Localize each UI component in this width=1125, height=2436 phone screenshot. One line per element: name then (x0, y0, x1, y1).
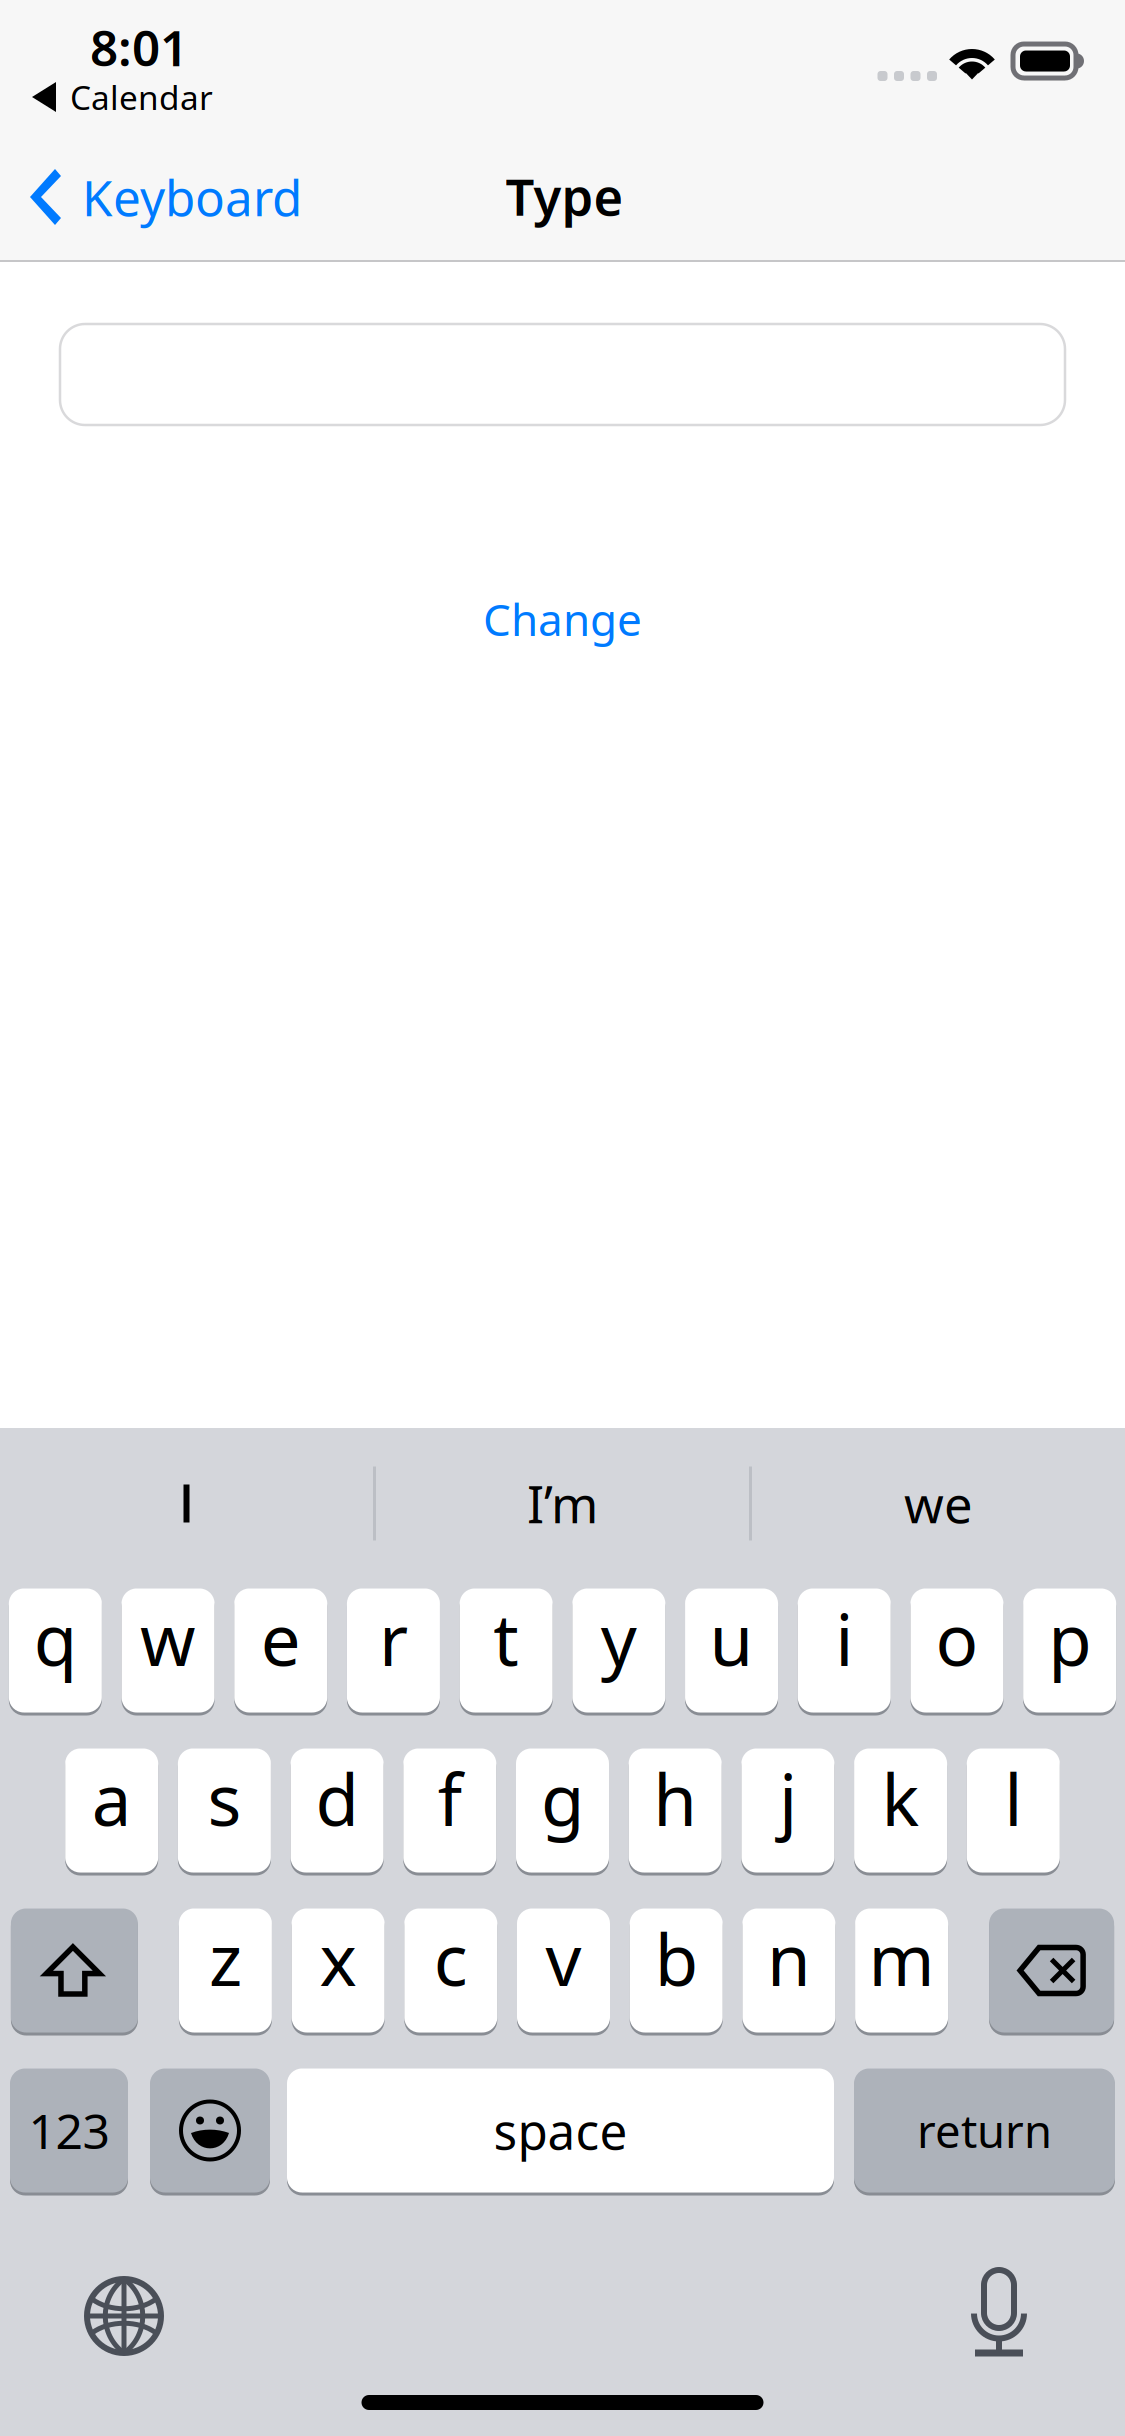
button[interactable]: s (178, 1747, 271, 1874)
button[interactable]: Calendar (0, 76, 213, 118)
button[interactable]: w (122, 1587, 215, 1714)
button[interactable]: z (179, 1907, 272, 2034)
button[interactable]: r (347, 1587, 440, 1714)
staticText: I’m (527, 1470, 598, 1537)
button[interactable]: e (234, 1587, 327, 1714)
staticText: x (320, 1912, 357, 2005)
staticText: Type (505, 162, 623, 230)
button[interactable]: t (460, 1587, 553, 1714)
staticText: e (261, 1592, 301, 1685)
staticText: Keyboard (82, 164, 302, 230)
button[interactable]: u (685, 1587, 778, 1714)
staticText: g (541, 1752, 584, 1845)
button[interactable]: space (287, 2067, 834, 2194)
button[interactable]: y (572, 1587, 665, 1714)
button[interactable]: x (292, 1907, 385, 2034)
button[interactable]: I (0, 1465, 373, 1549)
button[interactable]: Keyboard (0, 159, 338, 235)
button[interactable]: c (404, 1907, 497, 2034)
staticText: n (767, 1912, 811, 2005)
staticText: q (34, 1592, 77, 1685)
button[interactable]: h (629, 1747, 722, 1874)
button[interactable]: l (967, 1747, 1060, 1874)
button[interactable]: we (752, 1465, 1125, 1549)
button[interactable]: Change (0, 574, 1125, 664)
staticText: a (92, 1752, 132, 1845)
staticText: return (917, 2100, 1052, 2161)
staticText: Calendar (70, 75, 213, 119)
button[interactable]: return (854, 2067, 1115, 2194)
staticText: f (438, 1752, 462, 1845)
staticText: Change (483, 590, 642, 648)
button[interactable]: o (910, 1587, 1003, 1714)
staticText: space (493, 2098, 627, 2163)
staticText: y (601, 1592, 637, 1685)
button[interactable]: 123 (10, 2067, 128, 2194)
staticText: j (779, 1752, 797, 1845)
staticText: u (710, 1592, 754, 1685)
staticText: d (316, 1752, 359, 1845)
staticText: k (882, 1752, 920, 1845)
staticText: 123 (28, 2099, 109, 2162)
staticText: b (655, 1912, 698, 2005)
button[interactable]: Switch keyboard (84, 2276, 164, 2356)
staticText: m (869, 1912, 935, 2005)
staticText: t (493, 1592, 519, 1685)
button[interactable]: a (65, 1747, 158, 1874)
staticText: 8:01 (90, 14, 188, 80)
staticText: c (434, 1912, 468, 2005)
staticText: l (1004, 1752, 1022, 1845)
button[interactable]: q (9, 1587, 102, 1714)
button[interactable]: f (403, 1747, 496, 1874)
staticText: w (140, 1592, 196, 1685)
button[interactable]: j (741, 1747, 834, 1874)
button[interactable]: v (517, 1907, 610, 2034)
button[interactable]: d (291, 1747, 384, 1874)
button[interactable]: p (1023, 1587, 1116, 1714)
staticText: p (1048, 1592, 1091, 1685)
button[interactable] (150, 2067, 270, 2194)
button[interactable]: k (854, 1747, 947, 1874)
button[interactable]: I’m (376, 1465, 749, 1549)
staticText: h (653, 1752, 697, 1845)
staticText: v (545, 1912, 581, 2005)
button[interactable] (989, 1907, 1114, 2034)
button[interactable]: Dictate (959, 2272, 1039, 2360)
button[interactable]: m (855, 1907, 948, 2034)
staticText: i (835, 1592, 853, 1685)
staticText: o (935, 1592, 978, 1685)
button[interactable]: n (742, 1907, 835, 2034)
staticText: we (904, 1470, 973, 1537)
button[interactable] (11, 1907, 138, 2034)
button[interactable]: b (630, 1907, 723, 2034)
button[interactable]: g (516, 1747, 609, 1874)
staticText: z (209, 1912, 242, 2005)
button[interactable]: i (798, 1587, 891, 1714)
staticText: r (379, 1592, 408, 1685)
staticText: s (207, 1752, 241, 1845)
